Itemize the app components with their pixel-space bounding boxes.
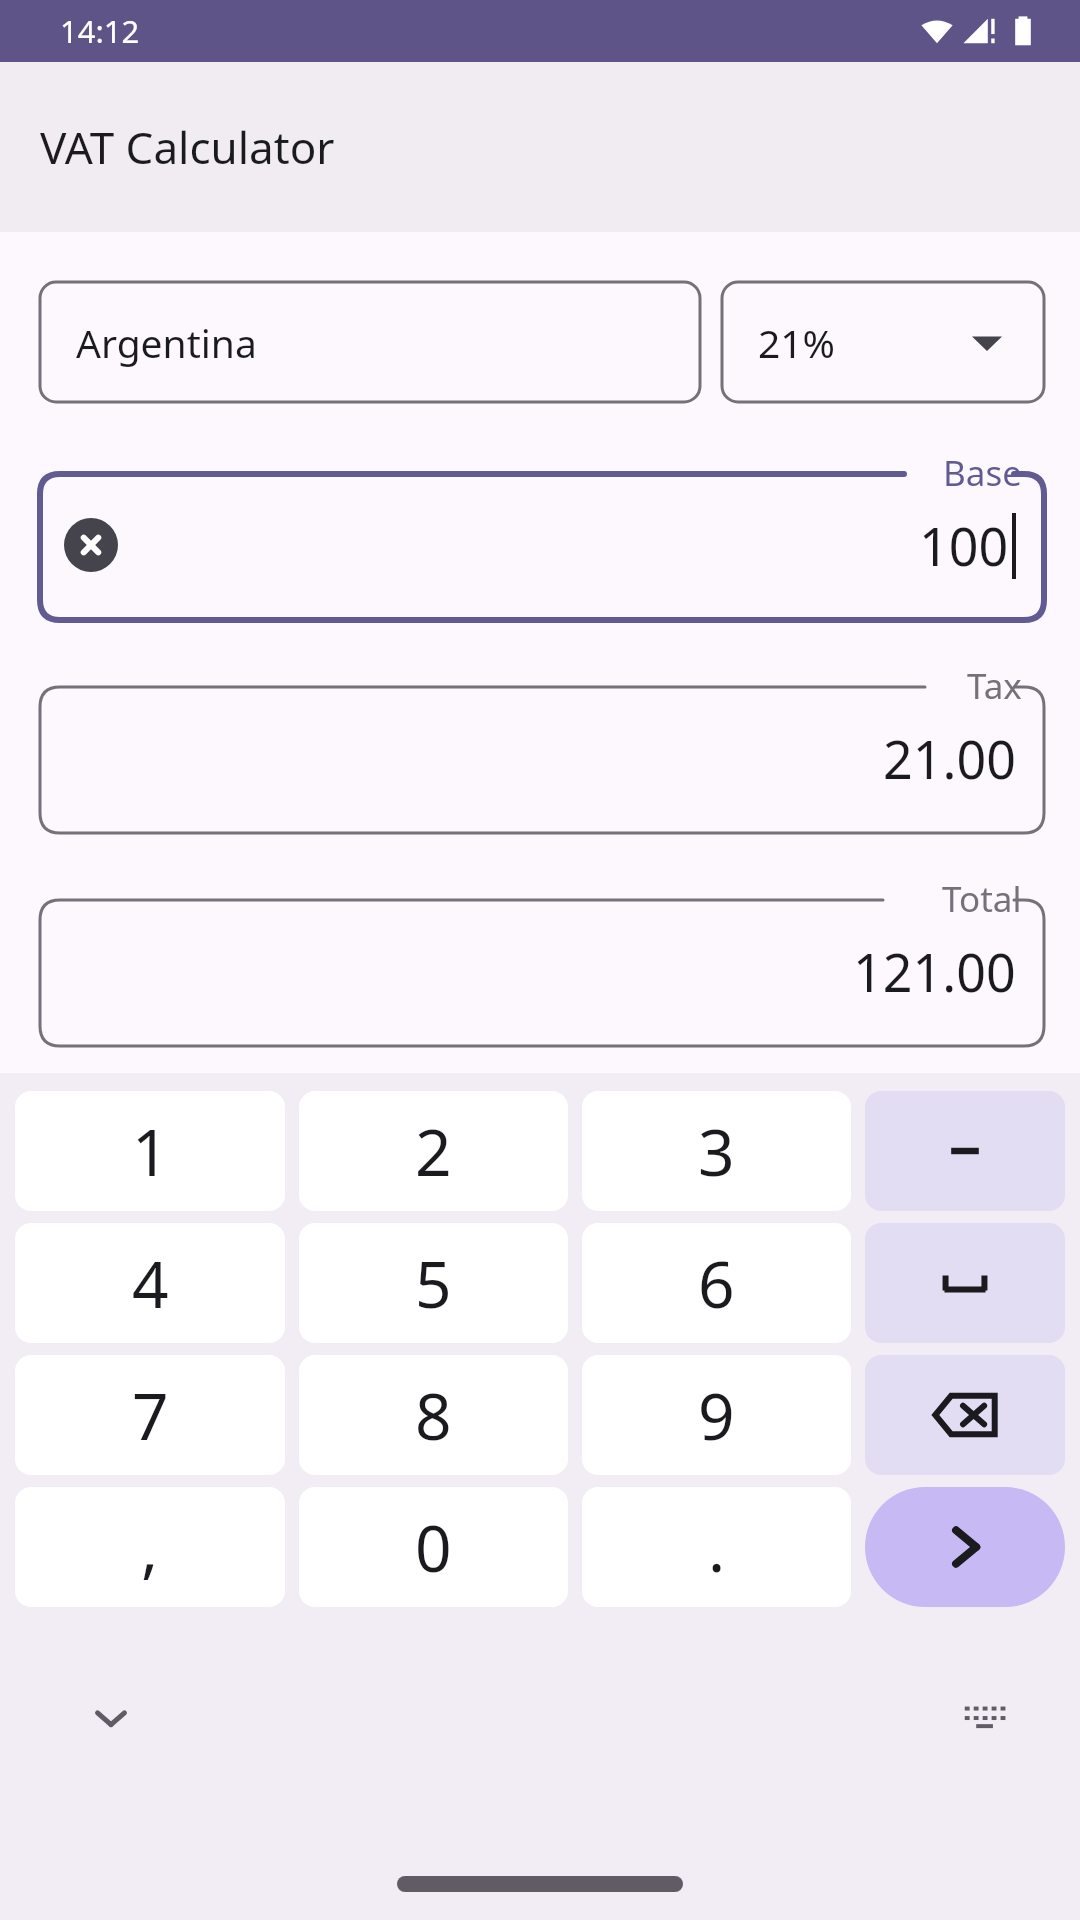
staticText: . — [708, 1504, 726, 1591]
button[interactable]: Minus — [865, 1091, 1065, 1211]
staticText: 7 — [132, 1372, 169, 1459]
button[interactable]: Backspace — [865, 1355, 1065, 1475]
staticText: Tax — [967, 662, 1022, 710]
button[interactable]: 9 — [582, 1355, 851, 1475]
button[interactable]: . — [582, 1487, 851, 1607]
staticText: 2 — [415, 1108, 452, 1195]
button[interactable]: 7 — [15, 1355, 285, 1475]
button[interactable]: Tax — [40, 663, 1044, 833]
staticText: 4 — [132, 1240, 169, 1327]
button[interactable]: Space — [865, 1223, 1065, 1343]
staticText: 100 — [919, 510, 1009, 581]
staticText: Argentina — [76, 316, 257, 369]
button[interactable]: Hide keyboard — [76, 1683, 146, 1753]
button[interactable]: Total — [40, 876, 1044, 1046]
staticText: 14:12 — [60, 10, 140, 52]
button[interactable]: 6 — [582, 1223, 851, 1343]
staticText: 1 — [132, 1108, 169, 1195]
button[interactable]: 21% — [722, 282, 1044, 402]
button[interactable]: 8 — [299, 1355, 568, 1475]
staticText: VAT Calculator — [40, 117, 335, 177]
button[interactable]: , — [15, 1487, 285, 1607]
button[interactable]: 3 — [582, 1091, 851, 1211]
button[interactable]: 4 — [15, 1223, 285, 1343]
button[interactable]: Base — [40, 450, 1044, 620]
staticText: 21.00 — [883, 723, 1016, 794]
staticText: 21% — [758, 316, 836, 369]
staticText: , — [141, 1504, 159, 1591]
staticText: 0 — [415, 1504, 452, 1591]
button[interactable]: 1 — [15, 1091, 285, 1211]
button[interactable]: Clear — [64, 518, 118, 572]
button[interactable]: Enter — [865, 1487, 1065, 1607]
staticText: Total — [942, 875, 1022, 923]
staticText: 6 — [698, 1240, 735, 1327]
staticText: 5 — [415, 1240, 452, 1327]
button[interactable]: 5 — [299, 1223, 568, 1343]
staticText: 121.00 — [853, 936, 1016, 1007]
button[interactable]: 0 — [299, 1487, 568, 1607]
staticText: Base — [943, 449, 1022, 497]
staticText: 3 — [698, 1108, 735, 1195]
button[interactable]: Argentina — [40, 282, 700, 402]
staticText: 9 — [698, 1372, 735, 1459]
button[interactable]: Switch keyboard — [950, 1683, 1020, 1753]
button[interactable]: 2 — [299, 1091, 568, 1211]
staticText: 8 — [415, 1372, 452, 1459]
